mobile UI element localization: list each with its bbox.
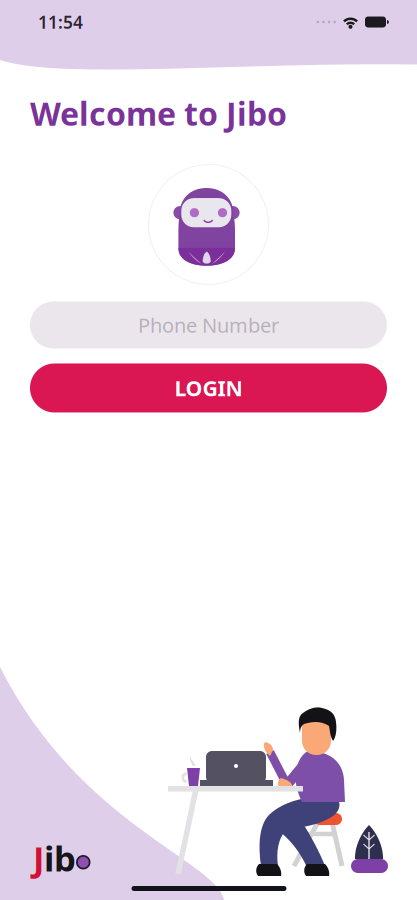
button[interactable]: Phone Number bbox=[0, 301, 417, 348]
staticText: Phone Number bbox=[138, 312, 279, 338]
button[interactable]: LOGIN bbox=[0, 363, 417, 412]
staticText: Welcome to Jibo bbox=[30, 92, 287, 134]
staticText: LOGIN bbox=[174, 374, 242, 402]
staticText: J bbox=[33, 835, 44, 881]
staticText: 11:54 bbox=[38, 10, 83, 33]
staticText: ib bbox=[44, 835, 76, 881]
